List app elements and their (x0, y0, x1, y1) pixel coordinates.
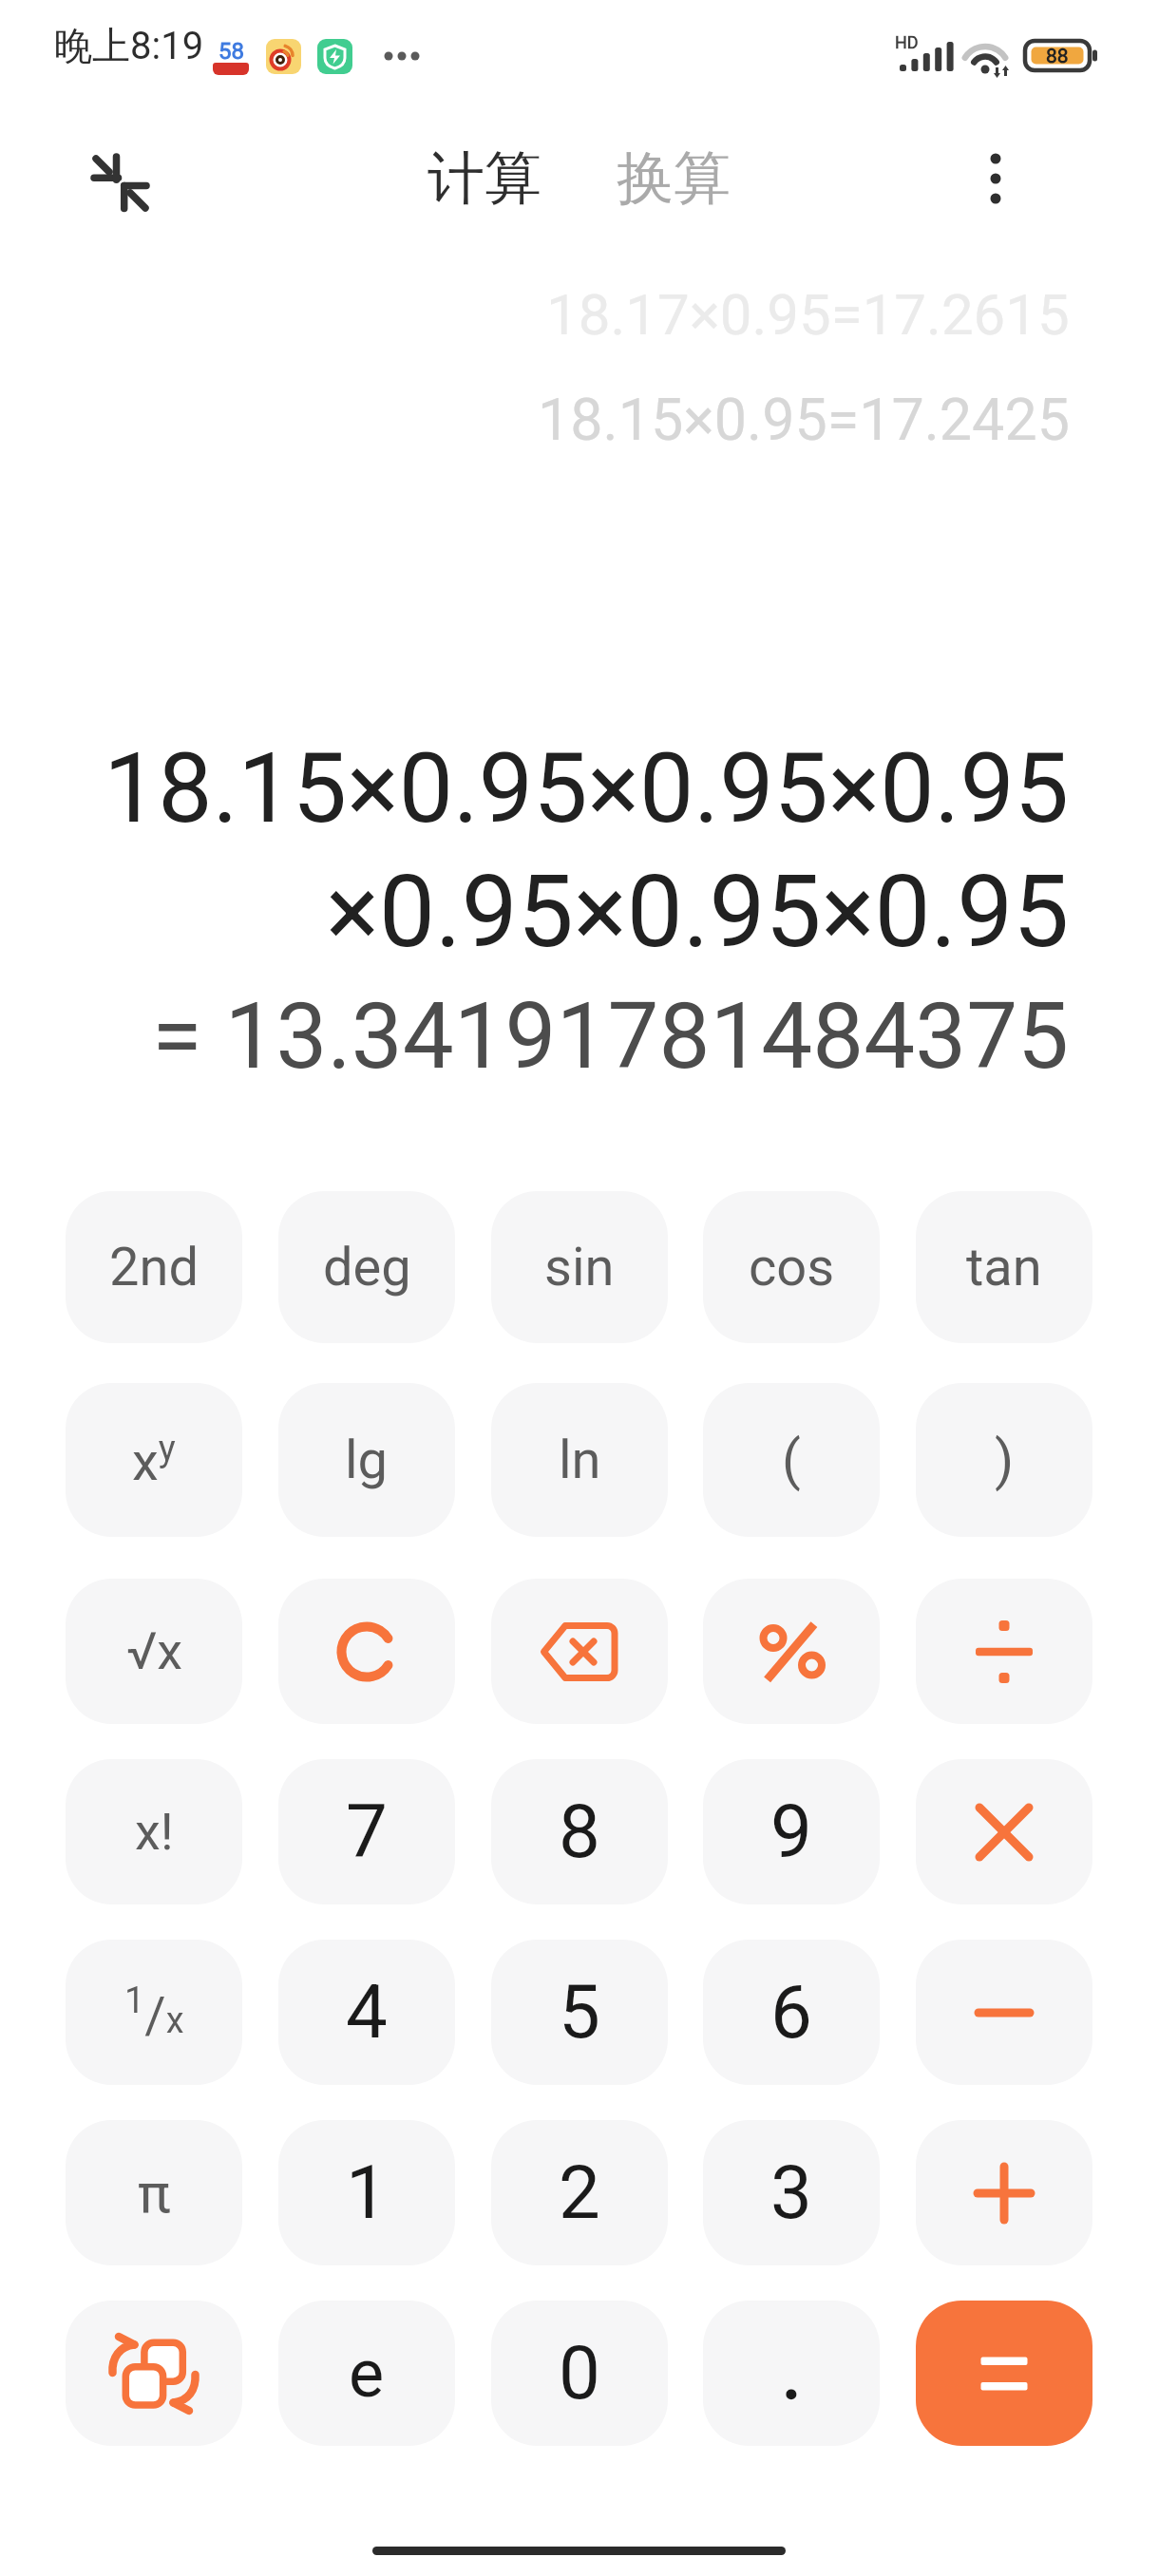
staticText: 18.17×0.95=17.2615 (546, 281, 1070, 348)
staticText: . (782, 2330, 802, 2416)
button[interactable]: x! (66, 1759, 242, 1904)
staticText: ) (995, 1428, 1015, 1492)
button[interactable] (916, 1940, 1092, 2085)
button[interactable]: 8 (491, 1759, 668, 1904)
staticText: 0 (559, 2330, 600, 2416)
staticText: sin (544, 1236, 615, 1298)
button[interactable]: 2nd (66, 1191, 242, 1343)
button[interactable] (491, 1579, 668, 1724)
button[interactable]: 7 (278, 1759, 455, 1904)
staticText: 9 (770, 1789, 812, 1875)
staticText: cos (749, 1236, 835, 1298)
staticText: e (349, 2335, 385, 2413)
staticText: HD (895, 32, 919, 52)
staticText: = 13.34191781484375 (152, 983, 1070, 1090)
staticText: 18.15×0.95×0.95×0.95 (104, 731, 1070, 845)
button[interactable]: xy (66, 1383, 242, 1537)
staticText: ln (559, 1429, 601, 1491)
button[interactable]: √x (66, 1579, 242, 1724)
button[interactable] (66, 2301, 242, 2446)
button[interactable]: deg (278, 1191, 455, 1343)
button[interactable] (982, 152, 1009, 205)
staticText: 88 (1046, 45, 1069, 68)
button[interactable] (92, 154, 147, 209)
staticText: 58 (218, 38, 244, 65)
staticText: 6 (770, 1969, 812, 2055)
button[interactable]: tan (916, 1191, 1092, 1343)
button[interactable]: lg (278, 1383, 455, 1537)
button[interactable]: ln (491, 1383, 668, 1537)
staticText: 计算 (427, 142, 541, 214)
button[interactable]: 3 (703, 2120, 880, 2265)
button[interactable]: 9 (703, 1759, 880, 1904)
button[interactable] (703, 1579, 880, 1724)
staticText: 晚上8:19 (54, 22, 204, 69)
button[interactable]: 1/x (66, 1940, 242, 2085)
staticText: √x (126, 1621, 182, 1681)
staticText: π (138, 2161, 171, 2226)
staticText: x! (135, 1802, 174, 1862)
staticText: 18.15×0.95=17.2425 (538, 386, 1070, 453)
button[interactable]: sin (491, 1191, 668, 1343)
staticText: deg (323, 1236, 411, 1298)
staticText: 2 (559, 2150, 600, 2236)
button[interactable]: cos (703, 1191, 880, 1343)
button[interactable]: 2 (491, 2120, 668, 2265)
staticText: 5 (559, 1969, 600, 2055)
button[interactable]: 1 (278, 2120, 455, 2265)
button[interactable]: 换算 (607, 142, 740, 214)
staticText: xy (132, 1428, 176, 1492)
button[interactable]: 5 (491, 1940, 668, 2085)
button[interactable] (916, 1579, 1092, 1724)
button[interactable] (916, 2301, 1092, 2446)
button[interactable]: π (66, 2120, 242, 2265)
staticText: lg (345, 1429, 389, 1491)
button[interactable]: 计算 (418, 142, 551, 214)
button[interactable]: ( (703, 1383, 880, 1537)
staticText: 1 (346, 2150, 388, 2236)
button[interactable]: ) (916, 1383, 1092, 1537)
staticText: ( (782, 1428, 801, 1492)
staticText: ×0.95×0.95×0.95 (326, 854, 1070, 971)
button[interactable] (916, 1759, 1092, 1904)
button[interactable]: 6 (703, 1940, 880, 2085)
staticText: 4 (346, 1969, 388, 2055)
staticText: 1/x (124, 1979, 184, 2046)
staticText: 3 (770, 2150, 812, 2236)
staticText: 8 (559, 1789, 600, 1875)
button[interactable]: . (703, 2301, 880, 2446)
button[interactable] (278, 1579, 455, 1724)
button[interactable]: e (278, 2301, 455, 2446)
button[interactable]: 0 (491, 2301, 668, 2446)
staticText: 换算 (617, 142, 731, 214)
button[interactable] (916, 2120, 1092, 2265)
staticText: 7 (346, 1789, 388, 1875)
staticText: tan (966, 1236, 1042, 1298)
staticText: 2nd (109, 1236, 199, 1298)
button[interactable]: 4 (278, 1940, 455, 2085)
